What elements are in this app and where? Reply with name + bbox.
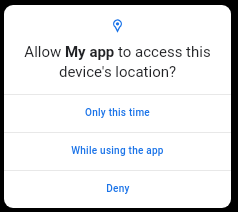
staticText: Only this time [85, 107, 150, 119]
button[interactable]: Deny [4, 171, 231, 208]
button[interactable]: While using the app [4, 133, 231, 170]
staticText: Deny [106, 183, 130, 195]
button[interactable]: Only this time [4, 95, 231, 132]
staticText: Allow My app to access this device's loc… [24, 43, 211, 81]
staticText: While using the app [71, 145, 164, 157]
